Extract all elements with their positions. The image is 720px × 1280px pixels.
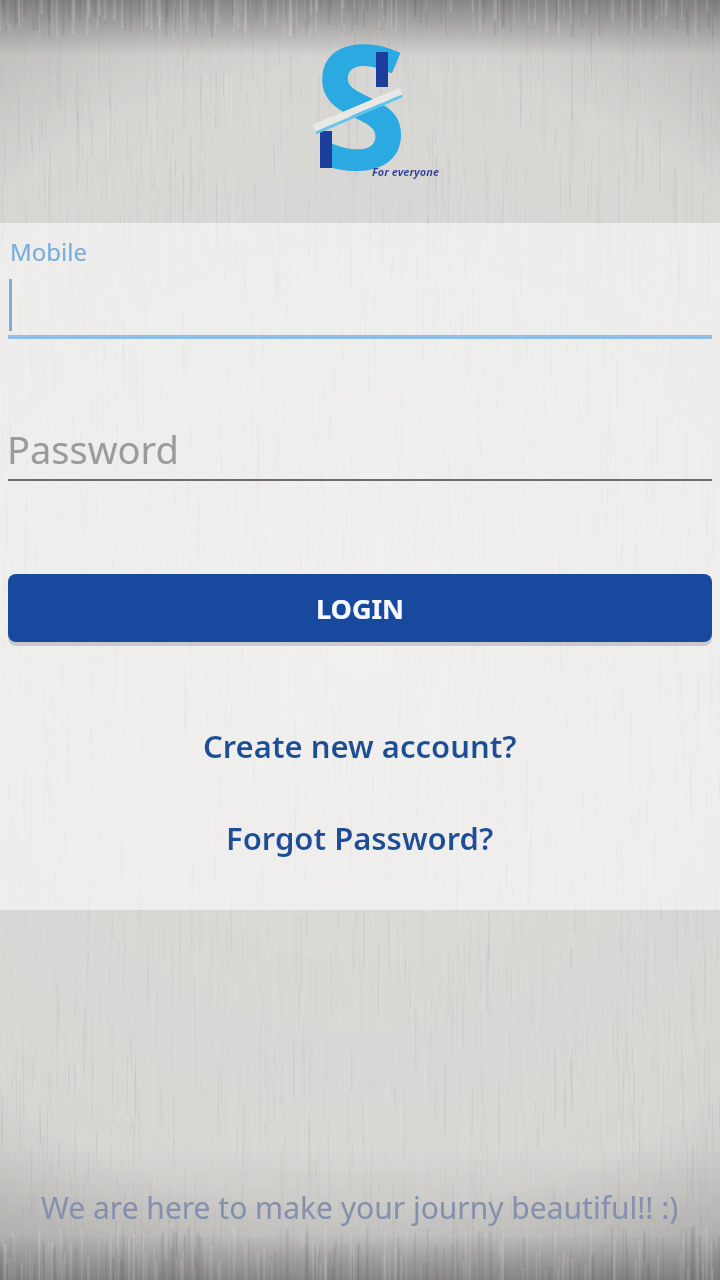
staticText: S: [313, 0, 408, 185]
button[interactable]: Create new account?: [0, 719, 720, 773]
staticText: Password: [7, 423, 179, 475]
staticText: Mobile: [10, 235, 87, 268]
button[interactable]: Mobile: [0, 235, 720, 340]
button[interactable]: Password: [0, 420, 720, 482]
staticText: For everyone: [372, 164, 440, 179]
button[interactable]: LOGIN: [8, 574, 712, 642]
staticText: LOGIN: [316, 590, 404, 627]
staticText: Create new account?: [203, 725, 517, 767]
staticText: We are here to make your journy beautifu…: [41, 1187, 679, 1228]
staticText: Forgot Password?: [226, 817, 494, 859]
button[interactable]: Forgot Password?: [0, 811, 720, 865]
